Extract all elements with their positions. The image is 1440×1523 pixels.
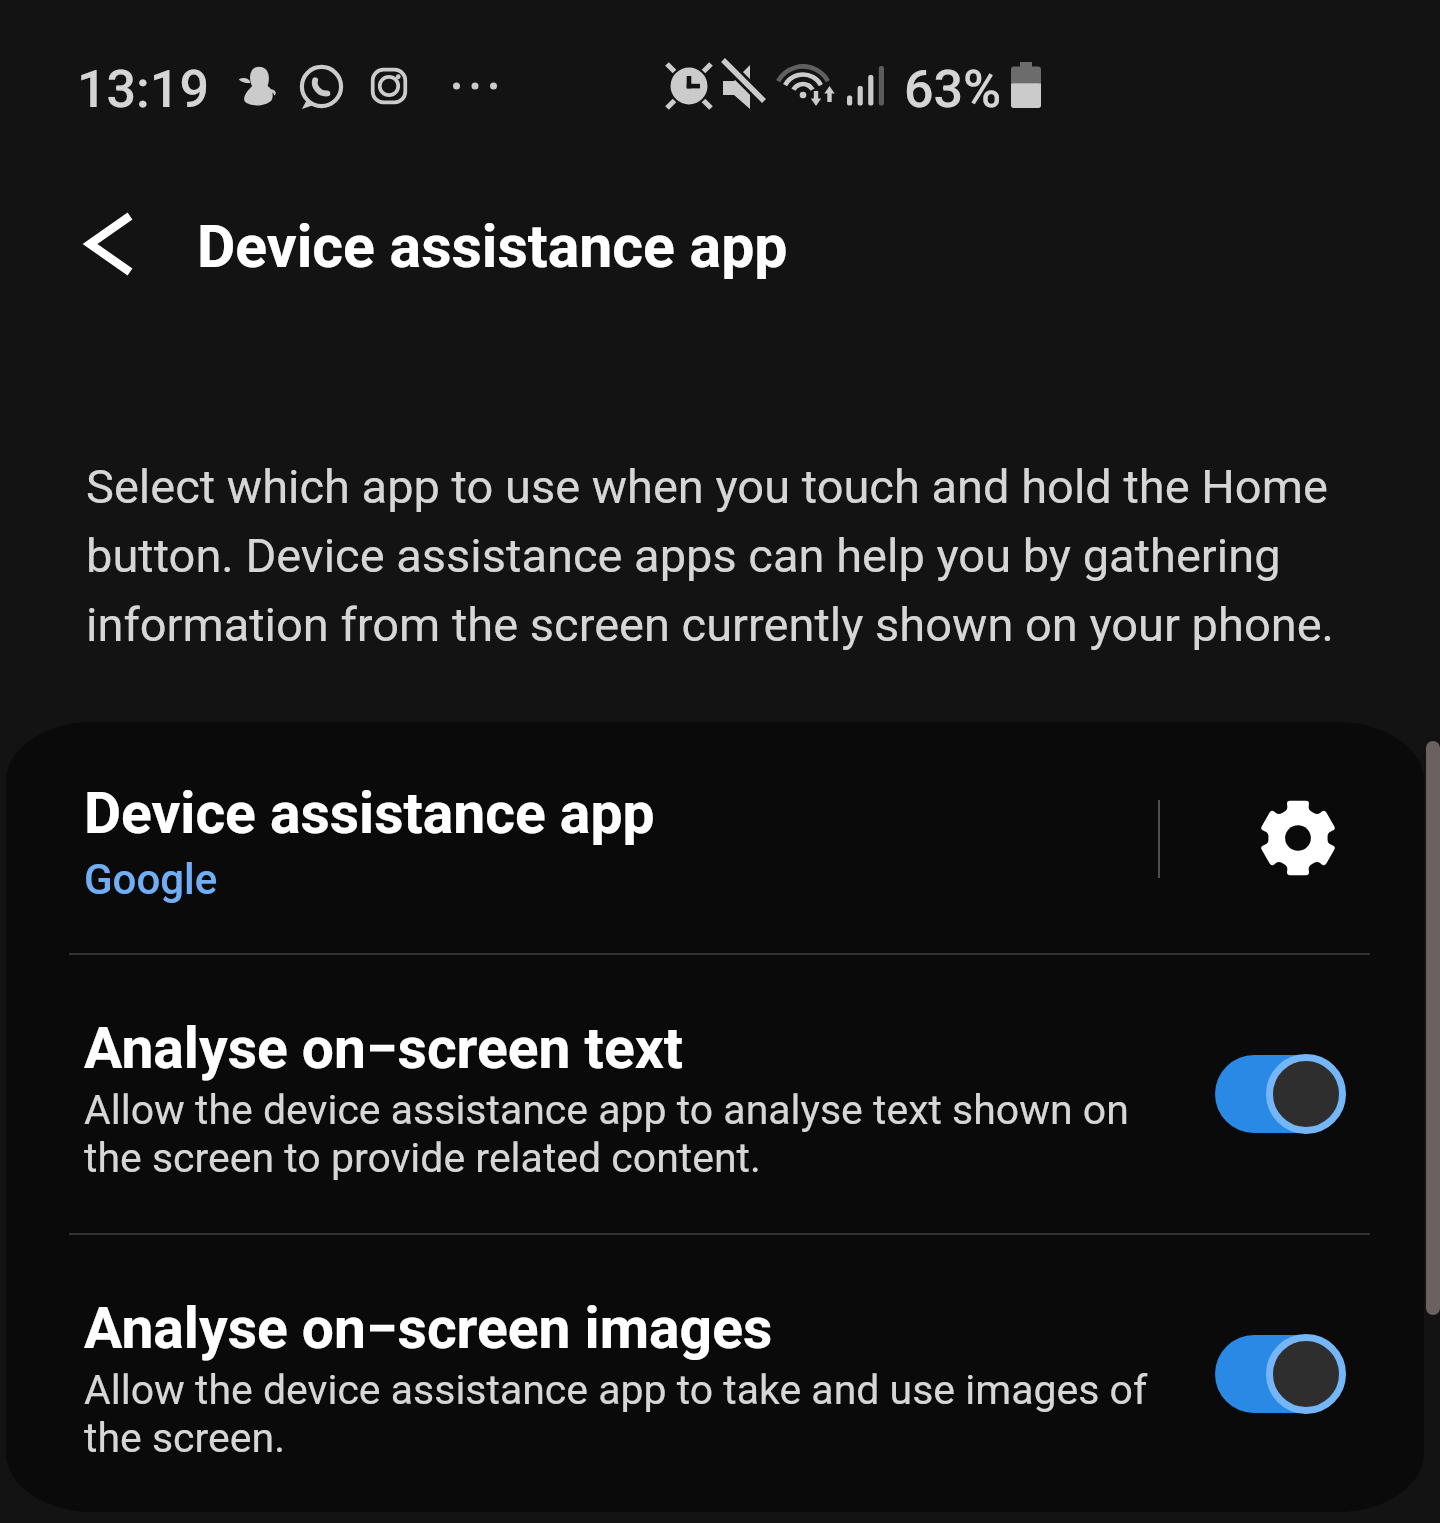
- staticText: Google: [84, 855, 218, 904]
- button[interactable]: Analyse on−screen text: [6, 956, 1424, 1234]
- button[interactable]: Settings: [1172, 722, 1424, 954]
- button[interactable]: Toggle: [1214, 1334, 1346, 1414]
- button[interactable]: Toggle: [1214, 1054, 1346, 1134]
- staticText: Select which app to use when you touch a…: [86, 459, 1386, 652]
- button[interactable]: Device assistance app: [6, 722, 1152, 954]
- staticText: Allow the device assistance app to take …: [84, 1366, 1174, 1462]
- staticText: Device assistance app: [197, 212, 788, 281]
- staticText: Device assistance app: [84, 780, 655, 847]
- staticText: 63%: [904, 59, 1002, 120]
- staticText: Allow the device assistance app to analy…: [84, 1086, 1174, 1182]
- staticText: 13:19: [77, 59, 209, 120]
- button[interactable]: Back: [51, 174, 169, 314]
- button[interactable]: Analyse on−screen images: [6, 1236, 1424, 1512]
- staticText: Analyse on−screen images: [84, 1295, 773, 1362]
- staticText: Analyse on−screen text: [84, 1015, 683, 1082]
